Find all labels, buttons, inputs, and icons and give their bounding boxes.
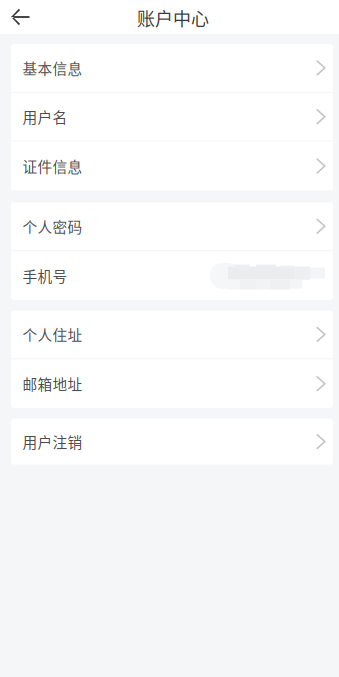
staticText: 基本信息 <box>22 57 82 78</box>
staticText: 邮箱地址 <box>22 373 82 394</box>
staticText: 用户注销 <box>22 431 82 452</box>
button[interactable]: 基本信息 <box>11 44 333 93</box>
button[interactable]: 用户名 <box>11 93 333 142</box>
staticText: 个人密码 <box>22 216 82 237</box>
button[interactable]: 个人密码 <box>11 202 333 251</box>
button[interactable]: 邮箱地址 <box>11 359 333 408</box>
button[interactable]: 手机号 <box>11 251 333 300</box>
button[interactable]: 个人住址 <box>11 310 333 359</box>
button[interactable]: 用户注销 <box>11 419 333 465</box>
button[interactable]: 证件信息 <box>11 142 333 190</box>
staticText: 用户名 <box>22 106 67 127</box>
staticText: 账户中心 <box>137 5 209 31</box>
button[interactable]: Back <box>0 0 40 34</box>
staticText: 手机号 <box>22 265 67 286</box>
staticText: 证件信息 <box>22 155 82 177</box>
staticText: 个人住址 <box>22 324 82 345</box>
